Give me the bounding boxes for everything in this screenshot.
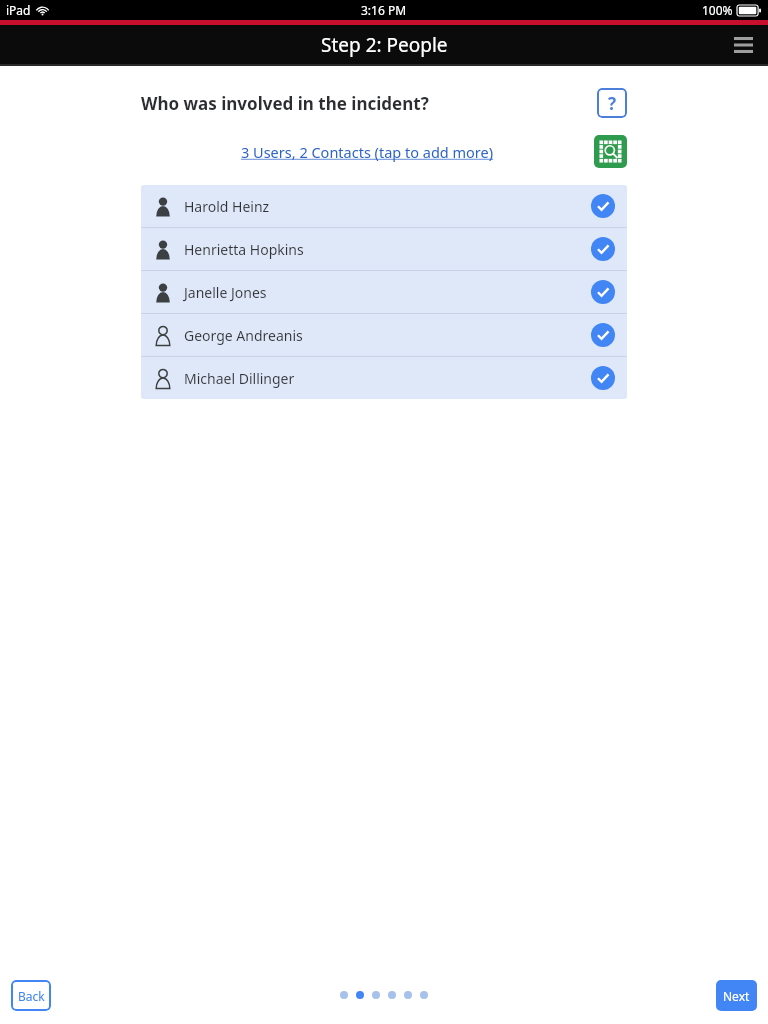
button[interactable]: Selected: [591, 194, 615, 218]
staticText: Next: [723, 988, 750, 1004]
button[interactable]: Selected: [591, 280, 615, 304]
button[interactable]: Michael Dillinger: [141, 357, 627, 399]
button[interactable]: Scan code: [594, 135, 627, 168]
staticText: 3:16 PM: [361, 2, 407, 18]
button[interactable]: Help: [597, 88, 627, 118]
button[interactable]: Henrietta Hopkins: [141, 228, 627, 270]
staticText: Who was involved in the incident?: [141, 92, 429, 115]
staticText: George Andreanis: [184, 326, 303, 345]
button[interactable]: Selected: [591, 323, 615, 347]
button[interactable]: George Andreanis: [141, 314, 627, 356]
button[interactable]: Harold Heinz: [141, 185, 627, 227]
button[interactable]: Selected: [591, 237, 615, 261]
staticText: Janelle Jones: [184, 283, 267, 302]
staticText: 100%: [702, 2, 733, 18]
button[interactable]: Janelle Jones: [141, 271, 627, 313]
button[interactable]: Selected: [591, 366, 615, 390]
staticText: 3 Users, 2 Contacts (tap to add more): [241, 142, 494, 162]
button[interactable]: Menu: [726, 28, 760, 62]
button[interactable]: 3 Users, 2 Contacts (tap to add more): [141, 142, 594, 162]
button[interactable]: Next: [716, 980, 757, 1011]
staticText: Michael Dillinger: [184, 369, 295, 388]
staticText: Step 2: People: [321, 32, 448, 58]
staticText: Harold Heinz: [184, 197, 270, 216]
staticText: ?: [608, 92, 617, 115]
staticText: Henrietta Hopkins: [184, 240, 304, 259]
staticText: iPad: [6, 2, 31, 18]
staticText: Back: [18, 988, 45, 1004]
button[interactable]: Back: [11, 980, 51, 1011]
